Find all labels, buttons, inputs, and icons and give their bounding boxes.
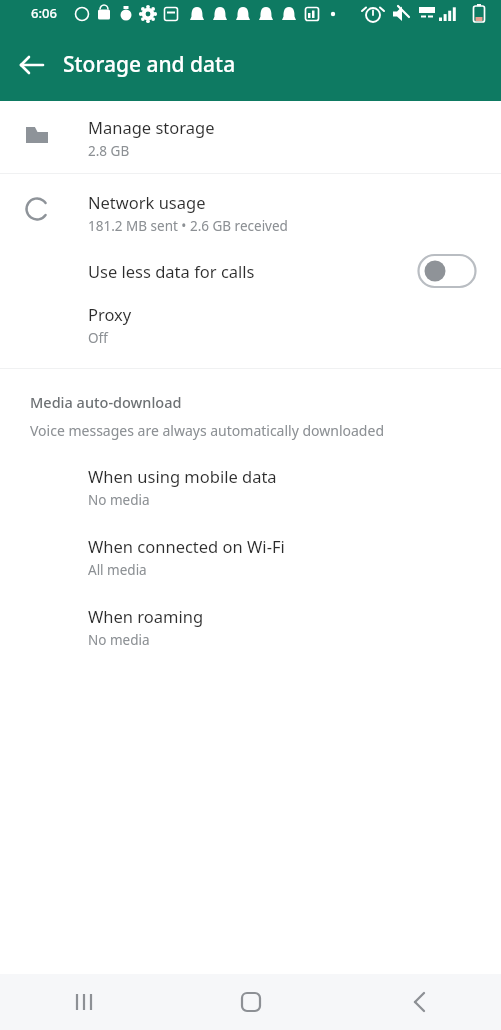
- staticText: When using mobile data: [88, 465, 277, 487]
- staticText: Off: [88, 329, 108, 347]
- button[interactable]: Proxy: [0, 303, 501, 347]
- staticText: Voice messages are always automatically …: [30, 421, 384, 440]
- button[interactable]: Manage storage: [0, 116, 501, 160]
- staticText: No media: [88, 631, 150, 649]
- staticText: Use less data for calls: [88, 260, 417, 282]
- button[interactable]: When using mobile data: [0, 465, 501, 509]
- staticText: Proxy: [88, 303, 132, 325]
- staticText: 2.8 GB: [88, 142, 130, 160]
- button[interactable]: Back: [8, 41, 56, 89]
- staticText: 6:06: [31, 4, 57, 22]
- button[interactable]: When roaming: [0, 605, 501, 649]
- staticText: Network usage: [88, 191, 206, 213]
- staticText: All media: [88, 561, 147, 579]
- staticText: 181.2 MB sent • 2.6 GB received: [88, 217, 288, 235]
- staticText: When roaming: [88, 605, 204, 627]
- staticText: No media: [88, 491, 150, 509]
- button[interactable]: When connected on Wi-Fi: [0, 535, 501, 579]
- button[interactable]: Use less data for calls: [0, 254, 501, 288]
- button[interactable]: Back: [334, 974, 501, 1030]
- button[interactable]: Home: [167, 974, 334, 1030]
- staticText: Manage storage: [88, 116, 215, 138]
- button[interactable]: Recents: [0, 974, 167, 1030]
- staticText: When connected on Wi-Fi: [88, 535, 285, 557]
- staticText: Media auto-download: [30, 392, 182, 412]
- staticText: Storage and data: [63, 50, 236, 79]
- button[interactable]: Network usage: [0, 191, 501, 235]
